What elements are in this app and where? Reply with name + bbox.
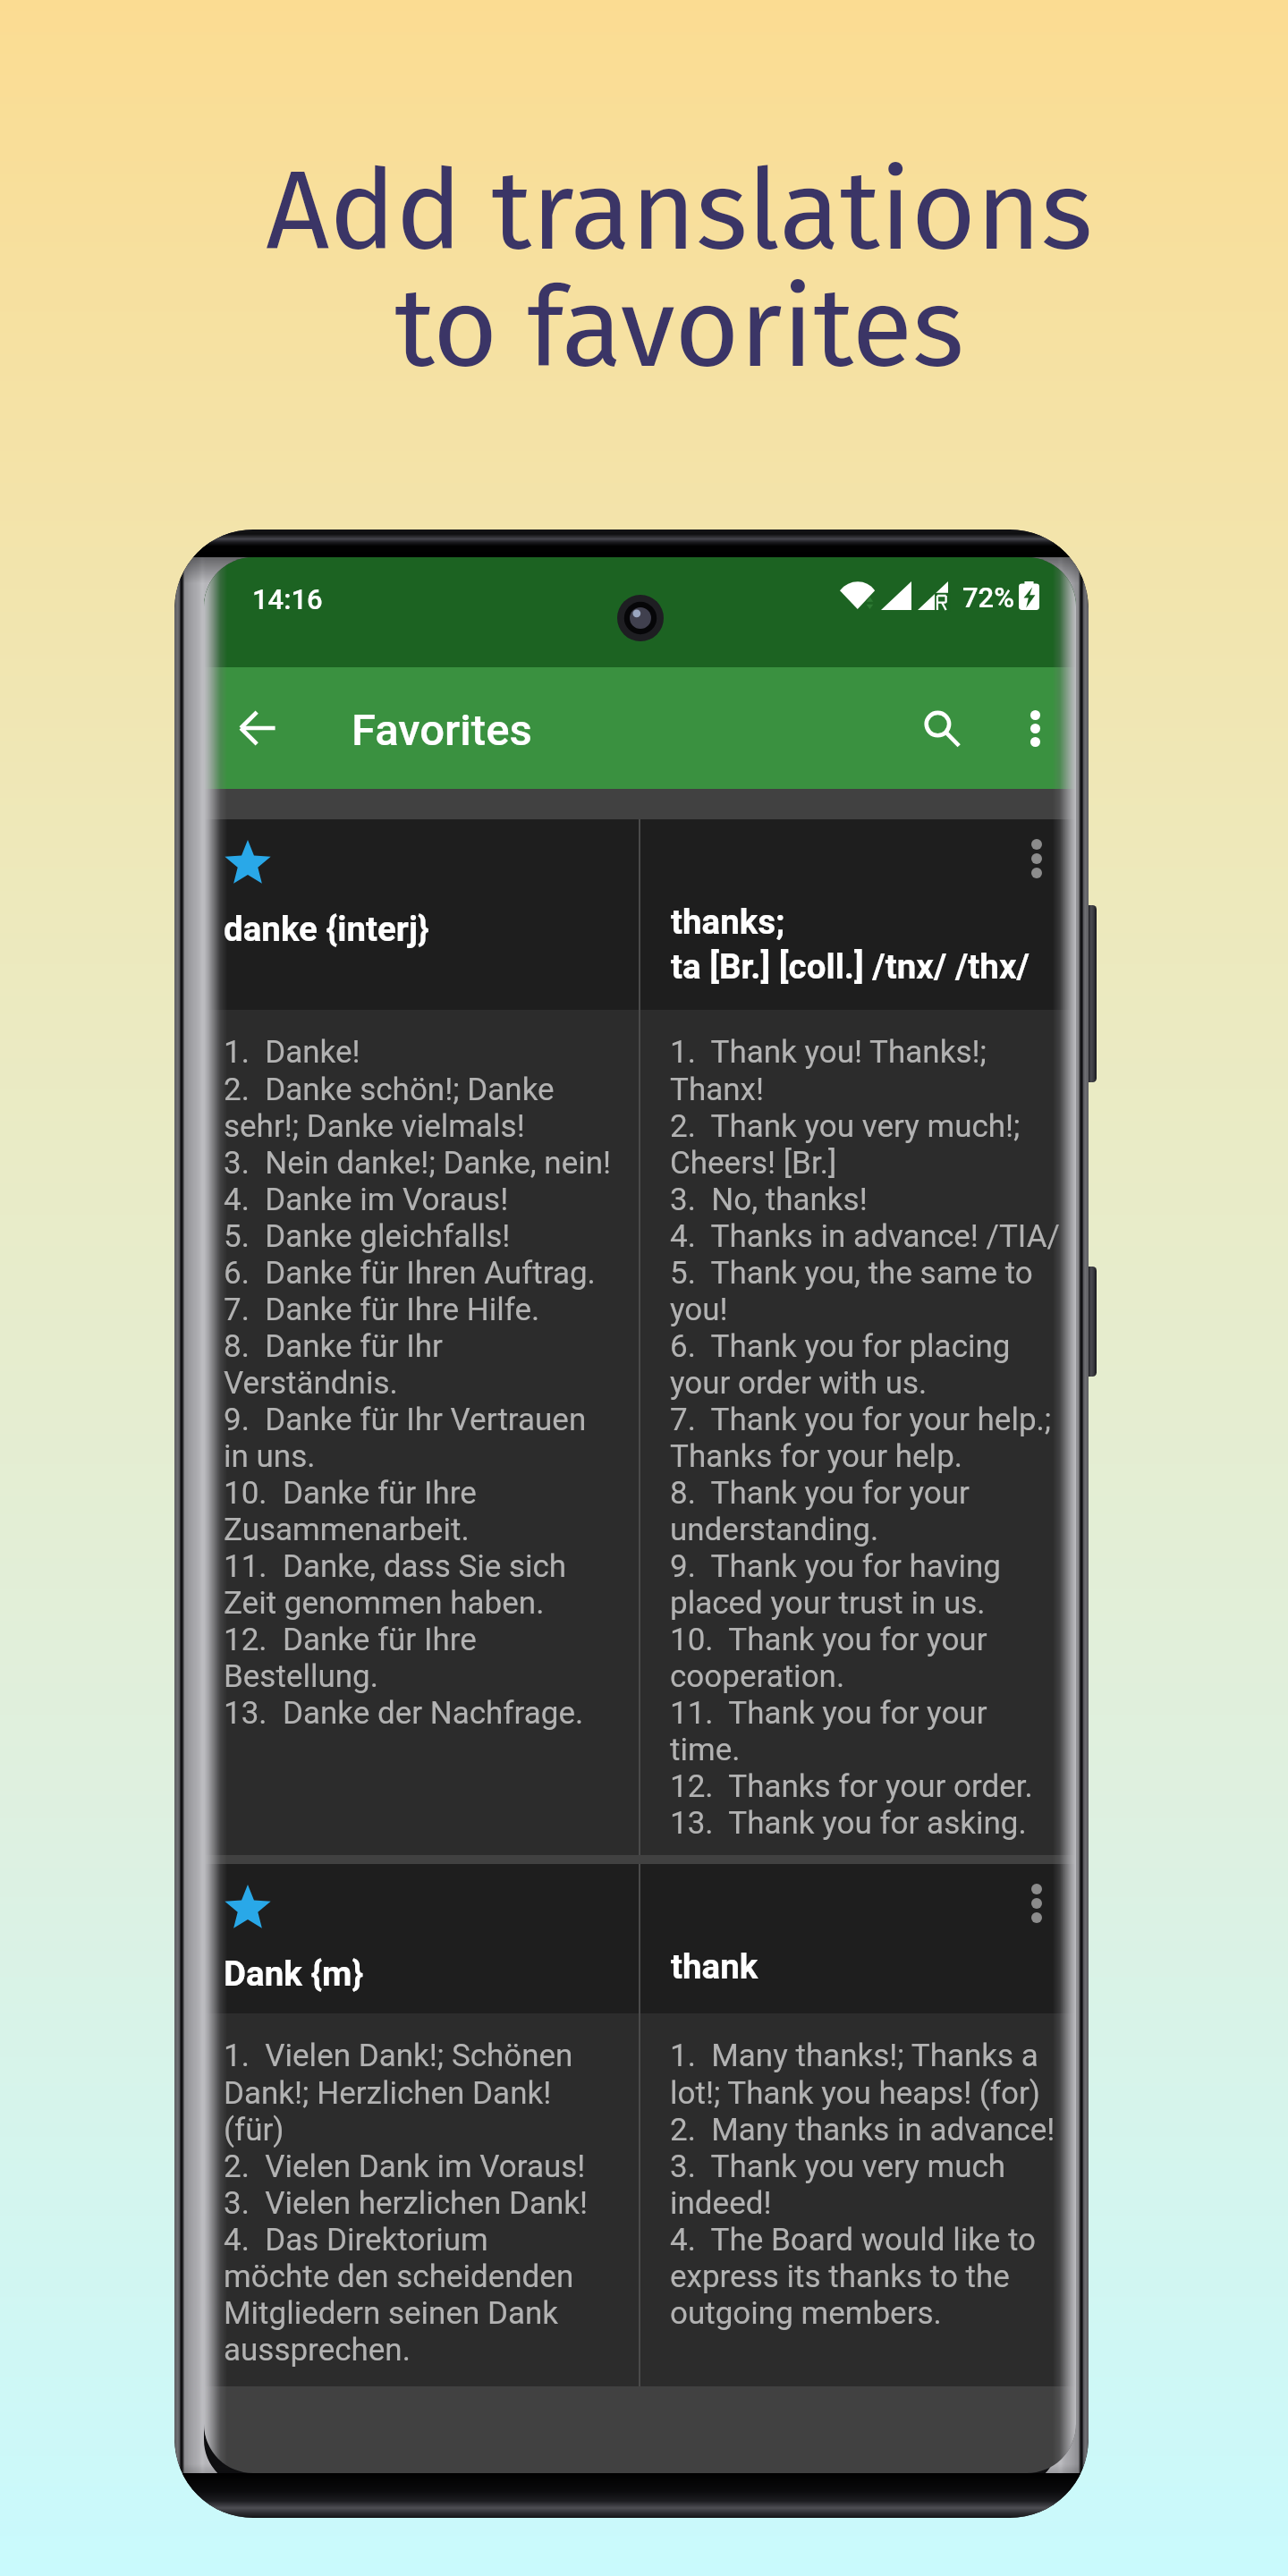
button[interactable]: Search bbox=[898, 685, 984, 771]
staticText: 1. Many thanks!; Thanks a lot!; Thank yo… bbox=[670, 2038, 1055, 2331]
button[interactable]: More options bbox=[1001, 823, 1072, 894]
staticText: danke {interj} bbox=[224, 909, 429, 949]
staticText: Dank {m} bbox=[224, 1953, 364, 1994]
staticText: 1. Danke! 2. Danke schön!; Danke sehr!; … bbox=[224, 1034, 612, 1731]
staticText: 72% bbox=[962, 581, 1015, 614]
button[interactable]: Back bbox=[215, 685, 301, 771]
button[interactable]: Dank {m} bbox=[204, 1864, 1076, 2386]
staticText: 14:16 bbox=[252, 583, 323, 615]
staticText: thank bbox=[671, 1946, 758, 1987]
staticText: Favorites bbox=[352, 705, 532, 756]
staticText: 1. Vielen Dank!; Schönen Dank!; Herzlich… bbox=[224, 2038, 589, 2368]
staticText: Add translations to favorites bbox=[266, 145, 1093, 395]
button[interactable]: More options bbox=[1003, 696, 1067, 760]
staticText: thanks; ta [Br.] [coll.] /tnx/ /thx/ bbox=[671, 902, 1030, 987]
staticText: 1. Thank you! Thanks!; Thanx! 2. Thank y… bbox=[670, 1034, 1060, 1841]
button[interactable]: danke {interj} bbox=[204, 819, 1076, 1855]
button[interactable]: More options bbox=[1001, 1868, 1072, 1939]
